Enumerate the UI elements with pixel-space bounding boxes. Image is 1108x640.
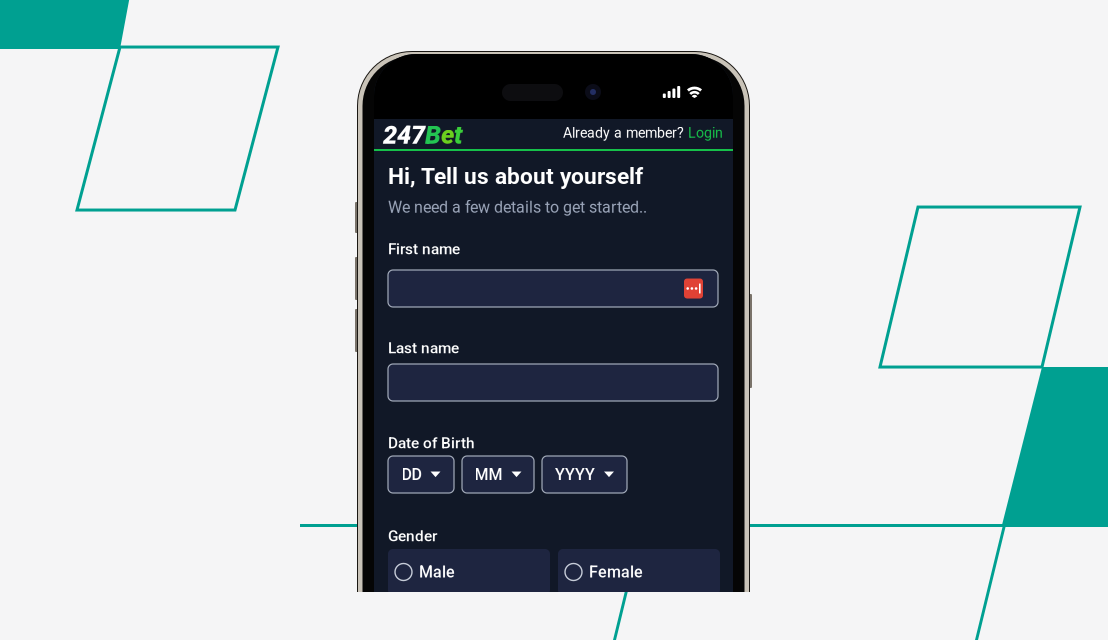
button[interactable] [388, 364, 718, 401]
button[interactable]: MM [462, 456, 534, 493]
button[interactable]: Male [388, 549, 550, 595]
staticText: MM [474, 465, 502, 484]
staticText: YYYY [555, 465, 595, 484]
staticText: Last name [388, 339, 459, 357]
button[interactable]: Already a member? [563, 125, 723, 141]
button[interactable]: DD [388, 456, 454, 493]
staticText: DD [401, 465, 421, 484]
button[interactable]: 247 [383, 118, 462, 148]
button[interactable]: YYYY [542, 456, 627, 493]
staticText: Male [419, 563, 455, 581]
staticText: Hi, Tell us about yourself [388, 163, 643, 190]
staticText: Already a member? [563, 125, 684, 141]
button[interactable]: Female [558, 549, 720, 595]
staticText: 247 [383, 120, 425, 150]
staticText: First name [388, 240, 460, 258]
staticText: We need a few details to get started.. [388, 198, 647, 217]
staticText: Gender [388, 527, 437, 545]
staticText: Login [688, 125, 723, 141]
staticText: e [441, 120, 454, 150]
staticText: B [425, 120, 441, 150]
staticText: Female [589, 563, 643, 581]
staticText: Date of Birth [388, 434, 475, 452]
staticText: t [454, 120, 462, 150]
button[interactable] [388, 270, 718, 307]
